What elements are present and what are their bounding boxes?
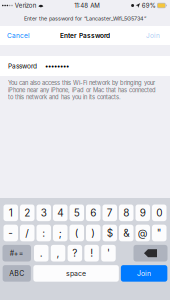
staticText: 2: [24, 207, 30, 219]
staticText: 1: [9, 207, 13, 219]
button[interactable]: Delete: [133, 245, 167, 261]
staticText: 11:48 AM: [74, 2, 100, 9]
button[interactable]: @: [135, 225, 150, 241]
staticText: !: [90, 247, 93, 259]
staticText: Join: [146, 31, 160, 39]
staticText: space: [66, 269, 86, 278]
button[interactable]: Join: [136, 26, 170, 45]
staticText: Enter the password for “Lancaster_Wifi_5…: [24, 15, 146, 22]
staticText: ?: [72, 247, 77, 259]
staticText: /: [25, 227, 29, 239]
staticText: 3: [41, 207, 47, 219]
staticText: ': [107, 247, 110, 259]
button[interactable]: Password: [0, 56, 170, 76]
button[interactable]: ,: [51, 245, 65, 261]
staticText: 0: [156, 207, 162, 219]
button[interactable]: /: [20, 225, 34, 241]
staticText: ••••••••: [45, 62, 69, 70]
staticText: ;: [59, 227, 62, 239]
staticText: 7: [107, 207, 113, 219]
staticText: ): [91, 227, 95, 239]
staticText: $: [107, 227, 113, 239]
button[interactable]: ": [152, 225, 166, 241]
button[interactable]: space: [33, 265, 119, 282]
staticText: Enter Password: [60, 31, 110, 39]
button[interactable]: ABC: [3, 265, 31, 282]
staticText: 5: [74, 207, 80, 219]
button[interactable]: 2: [20, 204, 34, 221]
button[interactable]: :: [36, 225, 51, 241]
staticText: @: [138, 227, 148, 239]
button[interactable]: &: [119, 225, 133, 241]
button[interactable]: .: [34, 245, 48, 261]
button[interactable]: 4: [53, 204, 67, 221]
button[interactable]: ): [86, 225, 100, 241]
button[interactable]: 5: [69, 204, 84, 221]
staticText: (: [75, 227, 79, 239]
staticText: &: [123, 227, 129, 239]
button[interactable]: ': [101, 245, 116, 261]
staticText: Password: [8, 62, 37, 70]
button[interactable]: 9: [135, 204, 150, 221]
button[interactable]: !: [84, 245, 99, 261]
staticText: 9: [140, 207, 146, 219]
staticText: ,: [56, 247, 59, 259]
button[interactable]: 1: [3, 204, 18, 221]
staticText: Cancel: [7, 31, 30, 39]
staticText: ": [157, 227, 162, 239]
staticText: Join: [137, 269, 151, 278]
staticText: ABC: [9, 269, 24, 278]
staticText: #+=: [10, 249, 24, 257]
button[interactable]: 7: [102, 204, 117, 221]
button[interactable]: ?: [68, 245, 82, 261]
staticText: 8: [123, 207, 129, 219]
button[interactable]: 3: [36, 204, 51, 221]
button[interactable]: Join: [121, 265, 167, 282]
button[interactable]: 6: [86, 204, 100, 221]
button[interactable]: Cancel: [0, 26, 37, 45]
staticText: 69%: [142, 2, 156, 9]
button[interactable]: -: [3, 225, 18, 241]
button[interactable]: #+=: [2, 245, 31, 261]
staticText: -: [8, 227, 13, 239]
button[interactable]: $: [102, 225, 117, 241]
button[interactable]: 0: [152, 204, 166, 221]
button[interactable]: 8: [119, 204, 133, 221]
staticText: 6: [90, 207, 96, 219]
staticText: :: [42, 227, 45, 239]
staticText: 4: [57, 207, 63, 219]
button[interactable]: (: [69, 225, 84, 241]
button[interactable]: ;: [53, 225, 67, 241]
staticText: Verizon: [13, 2, 37, 9]
staticText: You can also access this Wi-Fi network b…: [8, 79, 156, 101]
staticText: .: [40, 247, 43, 259]
